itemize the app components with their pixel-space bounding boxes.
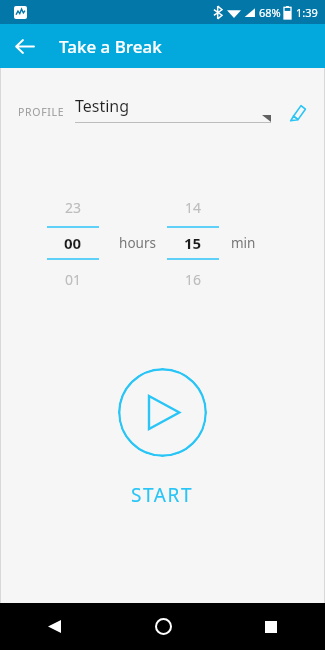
button[interactable]: 16 bbox=[167, 264, 219, 294]
staticText: START bbox=[131, 482, 194, 508]
button[interactable]: Back bbox=[0, 603, 109, 650]
staticText: 14 bbox=[185, 198, 202, 217]
staticText: 01 bbox=[65, 270, 82, 289]
button[interactable]: 01 bbox=[47, 264, 99, 294]
staticText: 68% bbox=[259, 5, 281, 20]
button[interactable]: Recent apps bbox=[217, 603, 325, 650]
button[interactable]: Home bbox=[109, 603, 217, 650]
button[interactable]: Start break bbox=[118, 368, 207, 457]
staticText: min bbox=[231, 234, 256, 252]
staticText: 16 bbox=[185, 270, 202, 289]
button[interactable]: Testing bbox=[75, 94, 271, 130]
button[interactable]: 14 bbox=[167, 192, 219, 222]
staticText: Testing bbox=[75, 95, 130, 117]
staticText: Take a Break bbox=[59, 35, 162, 58]
button[interactable]: Navigate up bbox=[6, 28, 42, 64]
staticText: hours bbox=[119, 234, 156, 252]
button[interactable]: 23 bbox=[47, 192, 99, 222]
staticText: 00 bbox=[64, 233, 82, 253]
staticText: PROFILE bbox=[18, 105, 65, 119]
button[interactable]: Edit profile bbox=[281, 96, 313, 128]
staticText: 1:39 bbox=[296, 5, 318, 20]
button[interactable]: 15 bbox=[167, 228, 219, 258]
staticText: 15 bbox=[184, 233, 202, 253]
button[interactable]: 00 bbox=[47, 228, 99, 258]
staticText: 23 bbox=[65, 198, 82, 217]
button[interactable]: START bbox=[113, 476, 212, 514]
